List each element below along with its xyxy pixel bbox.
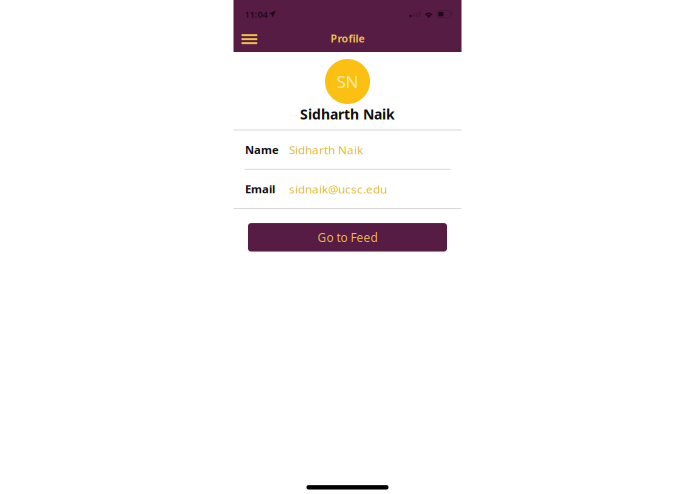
staticText: SN bbox=[336, 70, 358, 93]
button[interactable]: Menu bbox=[233, 25, 269, 51]
staticText: 11:04 bbox=[244, 8, 267, 20]
staticText: sidnaik@ucsc.edu bbox=[289, 181, 387, 197]
staticText: Sidharth Naik bbox=[300, 104, 395, 124]
staticText: Name bbox=[245, 142, 279, 157]
button[interactable]: Name bbox=[233, 130, 461, 169]
button[interactable]: Go to Feed bbox=[248, 223, 447, 252]
staticText: Email bbox=[245, 181, 275, 197]
staticText: Profile bbox=[330, 31, 364, 46]
staticText: Sidharth Naik bbox=[289, 142, 363, 158]
staticText: Go to Feed bbox=[317, 229, 377, 245]
button[interactable]: Email bbox=[233, 170, 461, 208]
